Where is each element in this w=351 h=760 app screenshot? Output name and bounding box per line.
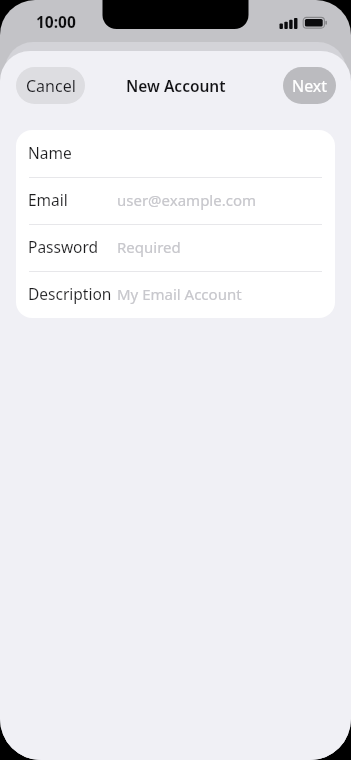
staticText: Email <box>28 189 68 210</box>
staticText: Cancel <box>26 75 76 97</box>
staticText: Next <box>292 75 328 97</box>
button[interactable]: Next <box>283 67 336 104</box>
staticText: New Account <box>126 75 226 96</box>
staticText: Name <box>28 142 72 163</box>
button[interactable]: Password <box>16 224 335 271</box>
staticText: My Email Account <box>117 284 242 304</box>
staticText: Description <box>28 283 112 304</box>
staticText: user@example.com <box>117 190 257 210</box>
staticText: Password <box>28 236 99 257</box>
button[interactable]: Name <box>16 130 335 177</box>
button[interactable]: Cancel <box>16 67 85 104</box>
button[interactable]: Description <box>16 271 335 318</box>
staticText: 10:00 <box>36 11 76 32</box>
button[interactable]: Email <box>16 177 335 224</box>
staticText: Required <box>117 237 181 257</box>
